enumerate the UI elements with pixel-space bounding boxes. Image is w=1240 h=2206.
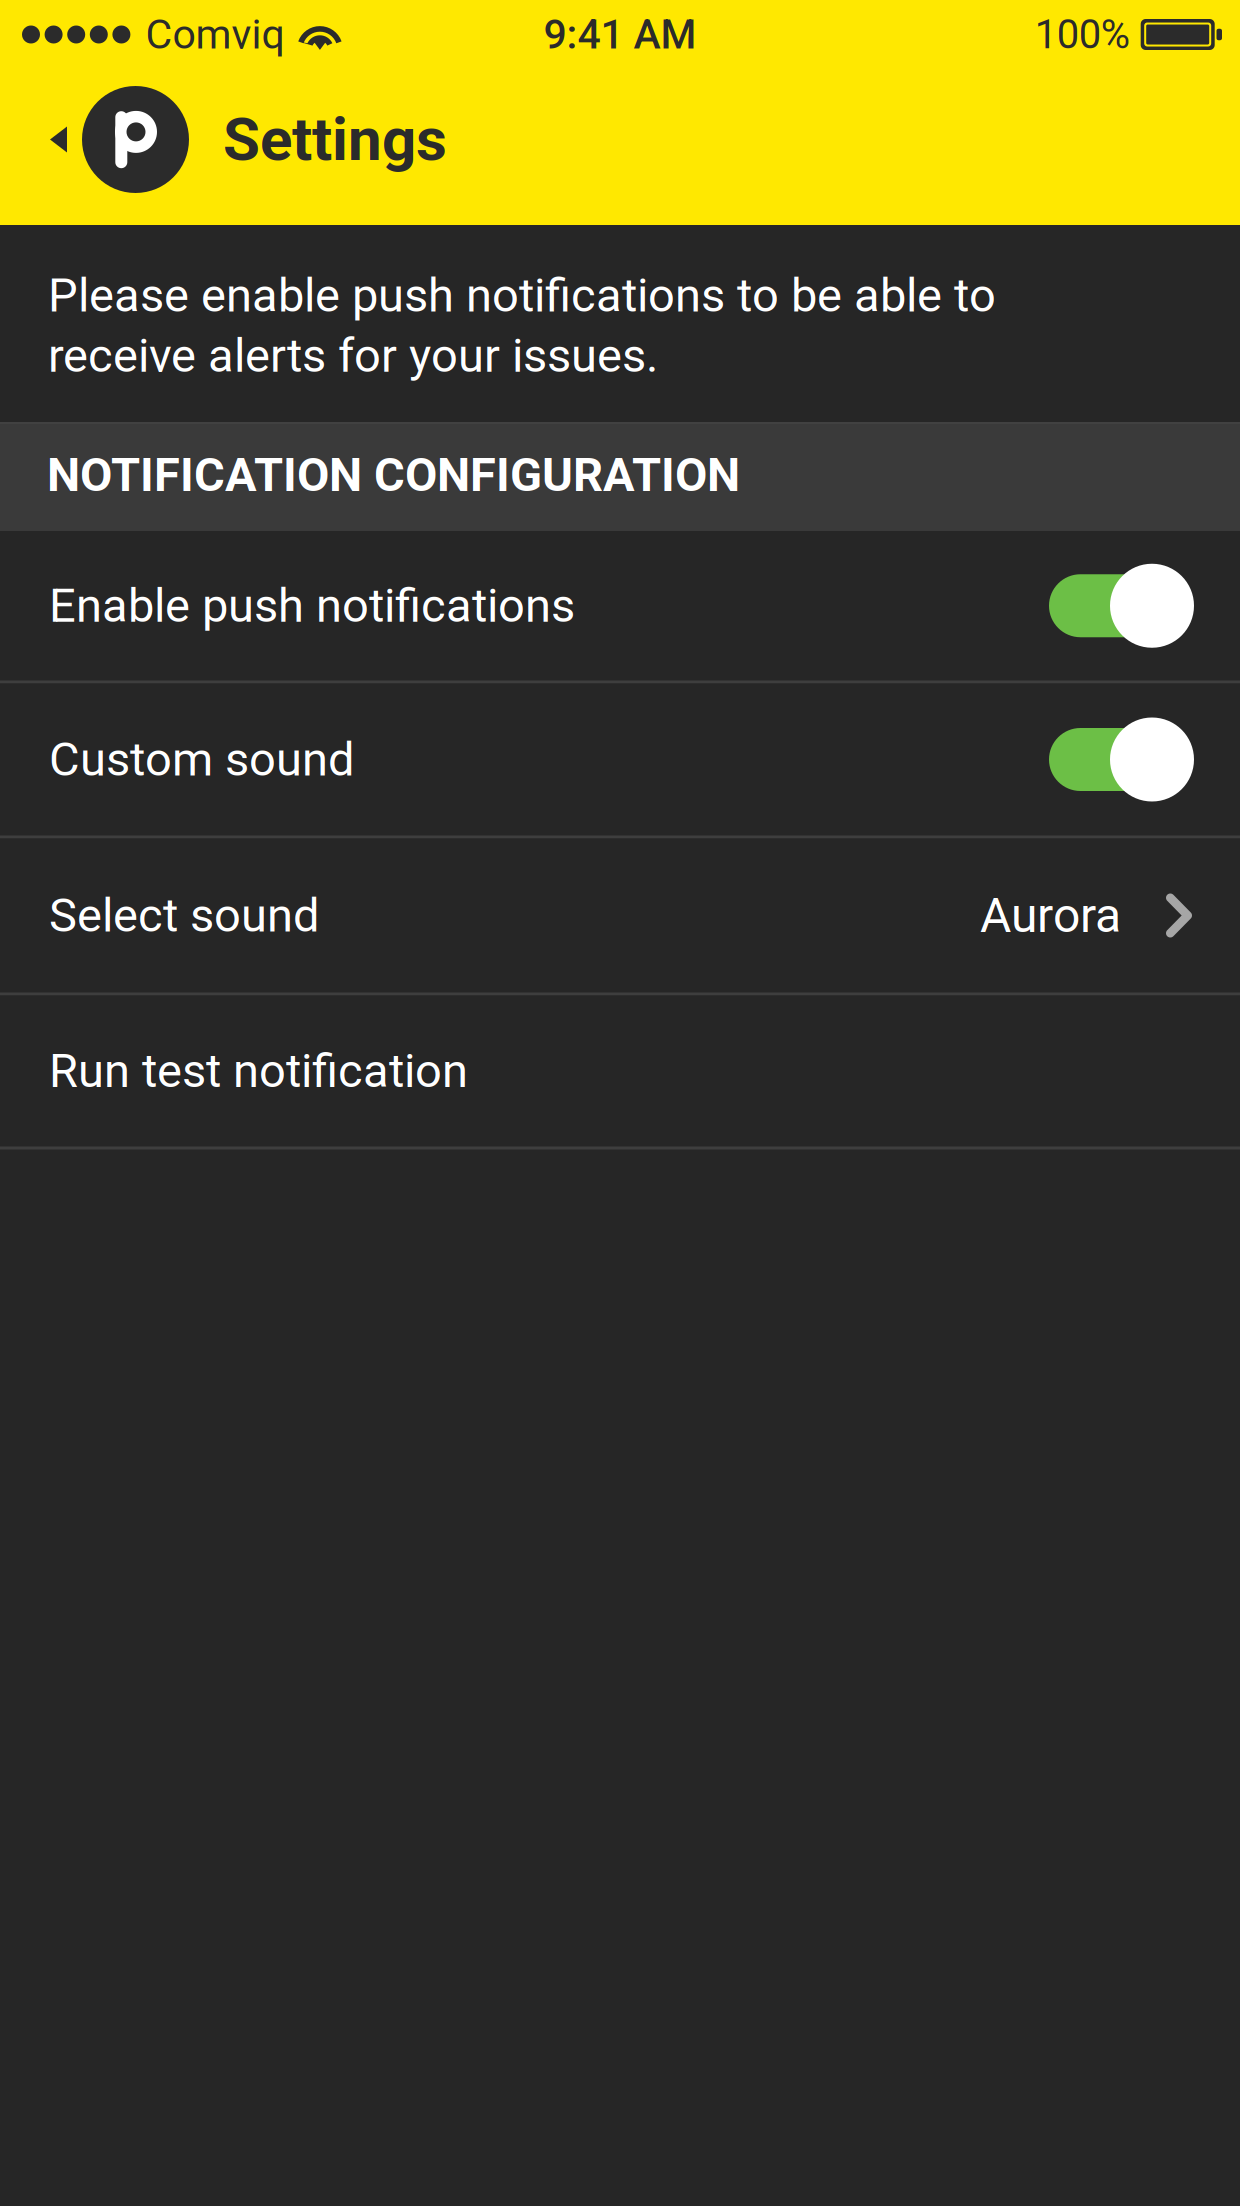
staticText: NOTIFICATION CONFIGURATION	[47, 447, 740, 503]
staticText: Select sound	[49, 888, 320, 943]
button[interactable]: Enable push notifications	[0, 531, 1240, 680]
button[interactable]: Custom sound	[0, 683, 1240, 835]
staticText: 9:41 AM	[543, 10, 696, 58]
staticText: Please enable push notifications to be a…	[48, 268, 996, 383]
staticText: Comviq	[145, 10, 284, 58]
staticText: Enable push notifications	[49, 578, 575, 633]
button[interactable]: Run test notification	[0, 995, 1240, 1146]
button[interactable]: Settings	[0, 62, 471, 225]
staticText: Custom sound	[49, 732, 355, 787]
staticText: 100%	[1035, 11, 1130, 58]
staticText: Aurora	[980, 887, 1121, 944]
button[interactable]: Select sound	[0, 838, 1240, 992]
staticText: Settings	[223, 104, 447, 175]
staticText: Run test notification	[49, 1043, 468, 1099]
